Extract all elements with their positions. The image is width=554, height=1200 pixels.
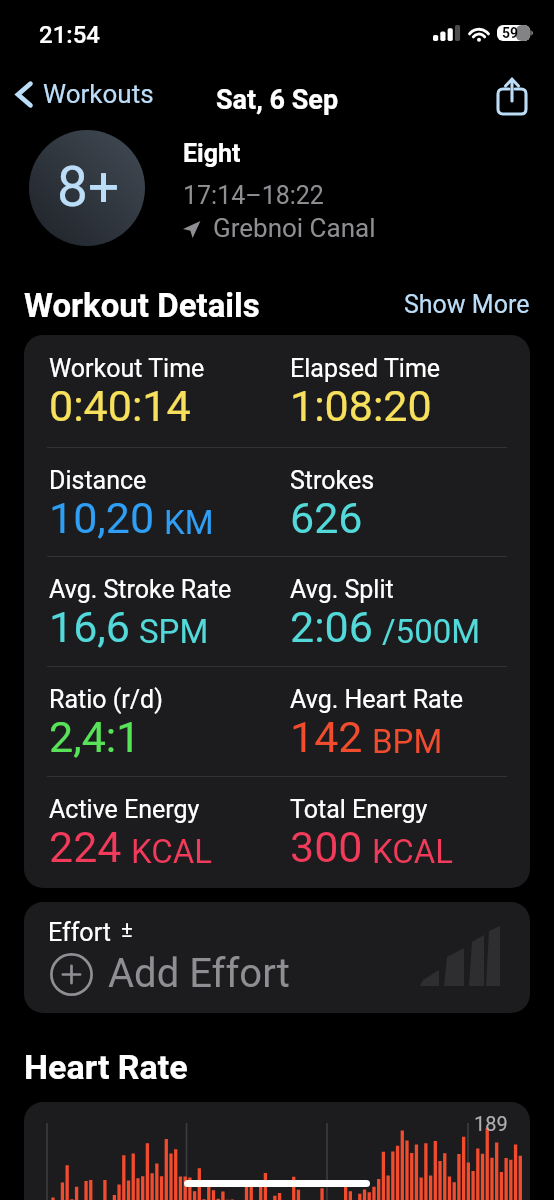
staticText: 2:06 <box>290 602 373 652</box>
staticText: KCAL <box>372 832 453 871</box>
staticText: Eight <box>183 139 241 168</box>
staticText: 10,20 <box>49 493 155 543</box>
staticText: /500M <box>382 612 481 651</box>
staticText: Distance <box>49 466 147 495</box>
staticText: Effort <box>48 918 111 947</box>
staticText: Heart Rate <box>24 1047 188 1087</box>
staticText: 224 <box>49 822 122 872</box>
staticText: 17:14–18:22 <box>183 181 324 210</box>
staticText: Ratio (r/d) <box>49 685 163 714</box>
staticText: 189 <box>474 1112 508 1135</box>
staticText: 21:54 <box>39 21 100 49</box>
staticText: 59 <box>502 25 519 41</box>
staticText: 8+ <box>57 155 120 219</box>
button[interactable]: Show More <box>401 290 533 319</box>
button[interactable]: Share <box>490 72 534 122</box>
staticText: 1:08:20 <box>290 381 432 431</box>
staticText: SPM <box>139 612 209 651</box>
staticText: Workout Time <box>49 354 205 383</box>
staticText: Workout Details <box>24 286 260 325</box>
staticText: 142 <box>290 712 363 762</box>
staticText: Avg. Heart Rate <box>290 685 464 714</box>
staticText: KCAL <box>131 832 212 871</box>
staticText: 2,4:1 <box>49 712 141 762</box>
button[interactable]: Effort <box>24 902 530 1013</box>
staticText: Avg. Stroke Rate <box>49 575 232 604</box>
staticText: BPM <box>372 722 443 761</box>
staticText: Grebnoi Canal <box>213 213 376 243</box>
staticText: 300 <box>290 822 363 872</box>
staticText: 0:40:14 <box>49 381 191 431</box>
staticText: KM <box>164 503 214 542</box>
staticText: Sat, 6 Sep <box>216 84 339 116</box>
staticText: Active Energy <box>49 795 200 824</box>
staticText: 626 <box>290 493 363 543</box>
staticText: Show More <box>404 290 530 319</box>
staticText: 16,6 <box>49 602 130 652</box>
button[interactable]: Workouts <box>9 73 159 115</box>
staticText: Elapsed Time <box>290 354 441 383</box>
staticText: Add Effort <box>108 950 290 997</box>
staticText: Avg. Split <box>290 575 394 604</box>
staticText: ± <box>121 917 133 943</box>
staticText: Total Energy <box>290 795 428 824</box>
staticText: Strokes <box>290 466 375 495</box>
staticText: Workouts <box>43 79 154 109</box>
